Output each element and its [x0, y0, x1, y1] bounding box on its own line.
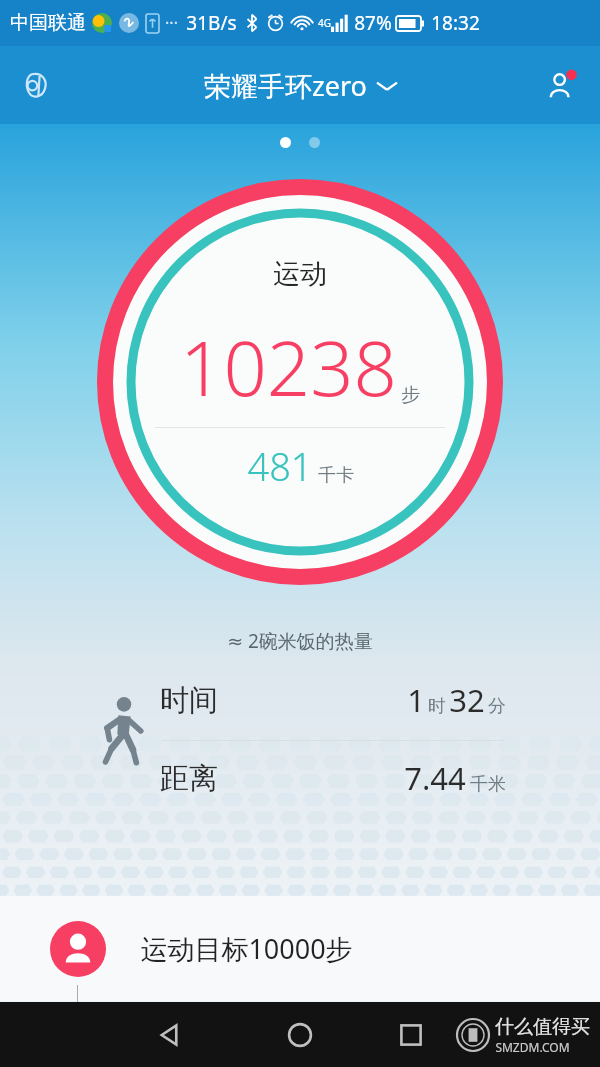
staticText: 距离: [160, 760, 218, 797]
button[interactable]: Device: [8, 57, 64, 113]
staticText: 时间: [160, 682, 218, 719]
staticText: SMZDM.COM: [495, 1039, 570, 1055]
staticText: 中国联通: [10, 11, 86, 35]
staticText: 10238: [180, 315, 397, 419]
staticText: 18:32: [431, 10, 480, 36]
staticText: 分: [488, 695, 506, 718]
staticText: 时: [428, 695, 446, 718]
staticText: 运动: [273, 257, 327, 291]
button[interactable]: 荣耀手环zero: [196, 63, 405, 108]
staticText: 荣耀手环zero: [204, 67, 367, 104]
staticText: 千米: [470, 773, 506, 796]
staticText: 32: [449, 679, 485, 721]
button[interactable]: 运动目标10000步: [0, 896, 600, 1001]
button[interactable]: Recents: [382, 1006, 440, 1064]
staticText: 87%: [354, 10, 392, 36]
staticText: ···: [165, 12, 178, 34]
button[interactable]: 时间: [160, 672, 506, 728]
staticText: 什么值得买: [495, 1015, 590, 1039]
staticText: ≈ 2碗米饭的热量: [227, 628, 373, 654]
button[interactable]: Home: [271, 1006, 329, 1064]
staticText: 千卡: [318, 464, 354, 487]
staticText: 1: [407, 679, 425, 721]
button[interactable]: 运动: [97, 179, 503, 585]
button[interactable]: Back: [140, 1006, 198, 1064]
staticText: 运动目标10000步: [140, 930, 353, 967]
staticText: 31B/s: [186, 10, 237, 36]
button[interactable]: 距离: [160, 750, 506, 806]
staticText: 步: [401, 383, 420, 407]
button[interactable]: Profile: [534, 57, 590, 113]
staticText: 481: [247, 440, 313, 492]
staticText: 7.44: [404, 757, 466, 799]
staticText: 4G: [318, 16, 331, 30]
